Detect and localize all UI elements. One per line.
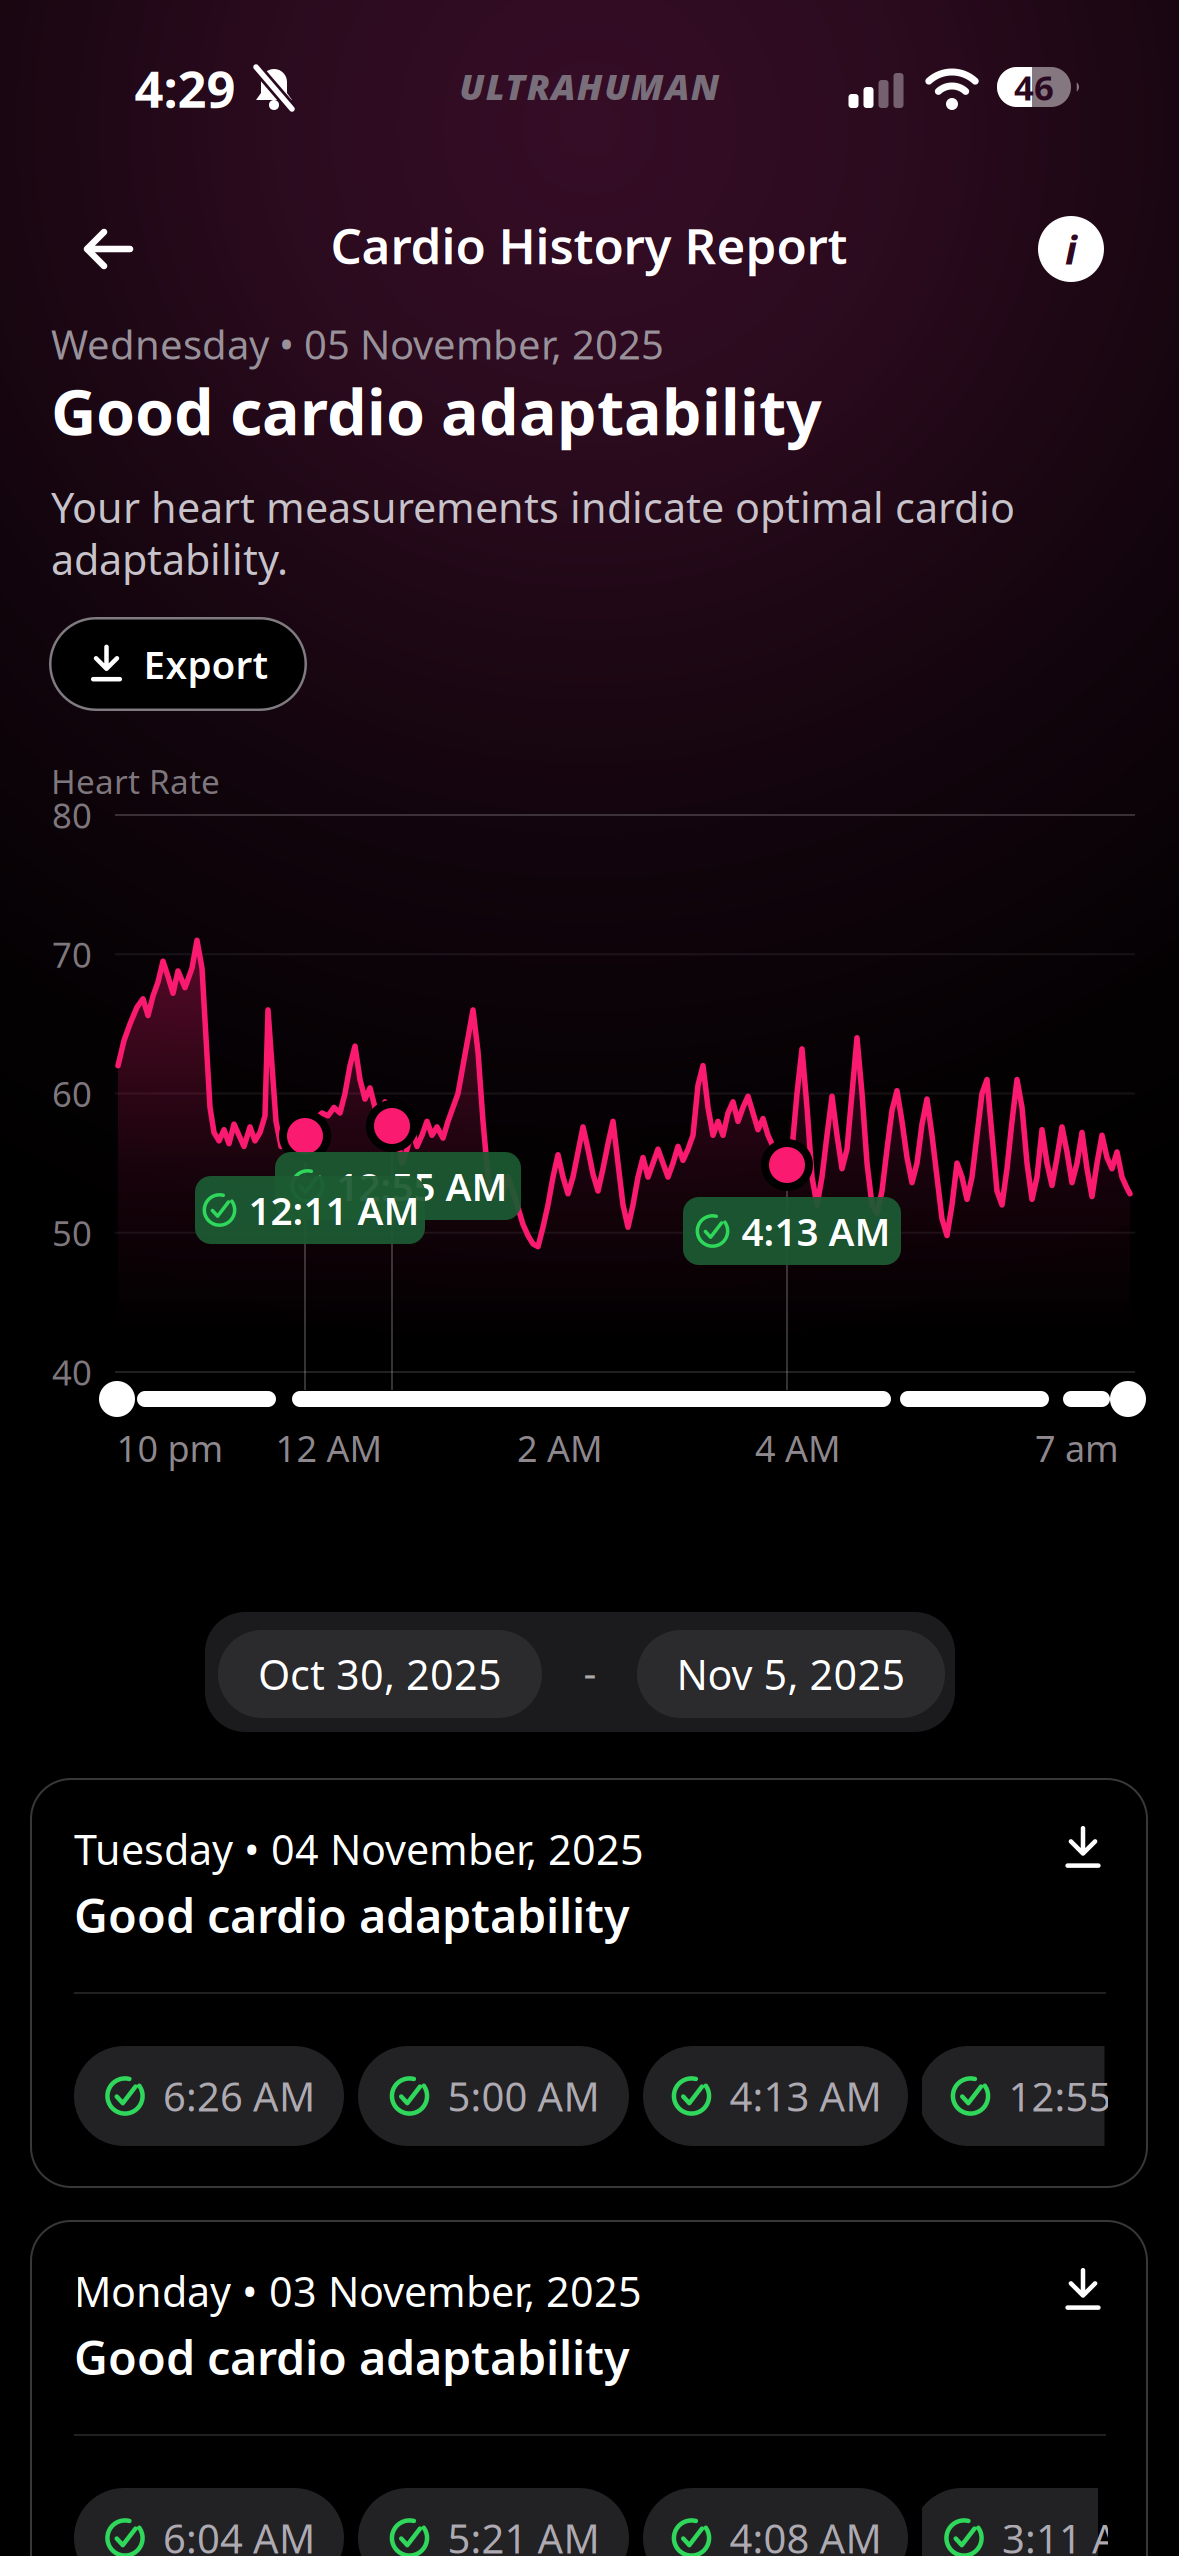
- staticText: Good cardio adaptability: [51, 369, 822, 453]
- button[interactable]: Nov 5, 2025: [637, 1630, 945, 1718]
- button[interactable]: 5:21 AM: [358, 2488, 629, 2556]
- staticText: Export: [143, 638, 268, 690]
- button[interactable]: 3:11 A: [922, 2488, 1108, 2556]
- staticText: 80: [52, 792, 92, 838]
- staticText: 10 pm: [116, 1424, 223, 1472]
- button[interactable]: Download report: [1061, 2268, 1105, 2312]
- staticText: 40: [52, 1349, 92, 1395]
- staticText: 6:04 AM: [163, 2511, 315, 2556]
- button[interactable]: Oct 30, 2025: [218, 1630, 542, 1718]
- button[interactable]: 6:26 AM: [74, 2046, 344, 2146]
- staticText: ULTRAHUMAN: [459, 62, 719, 110]
- staticText: 46: [1014, 64, 1054, 110]
- staticText: Wednesday • 05 November, 2025: [51, 317, 664, 370]
- staticText: 4:29: [134, 54, 235, 122]
- staticText: 3:11 A: [1002, 2511, 1118, 2556]
- staticText: 2 AM: [517, 1424, 603, 1472]
- staticText: 5:00 AM: [447, 2069, 599, 2122]
- staticText: i: [1065, 222, 1077, 275]
- staticText: 4 AM: [755, 1424, 841, 1472]
- staticText: Cardio History Report: [330, 212, 847, 278]
- button[interactable]: Range start: [99, 1381, 135, 1417]
- button[interactable]: Export: [49, 617, 307, 711]
- button[interactable]: Info: [1038, 216, 1104, 282]
- staticText: 12:11 AM: [248, 1184, 419, 1236]
- staticText: Nov 5, 2025: [676, 1647, 905, 1701]
- button[interactable]: 12:55: [922, 2046, 1108, 2146]
- staticText: Your heart measurements indicate optimal…: [51, 480, 1015, 534]
- button[interactable]: Range end: [1110, 1381, 1146, 1417]
- staticText: 7 am: [1035, 1424, 1119, 1472]
- staticText: 4:13 AM: [729, 2069, 881, 2122]
- staticText: Good cardio adaptability: [74, 2326, 630, 2388]
- staticText: 4:13 AM: [741, 1205, 890, 1257]
- button[interactable]: 6:04 AM: [74, 2488, 344, 2556]
- button[interactable]: 4:13 AM: [643, 2046, 908, 2146]
- staticText: 12:55: [1008, 2069, 1111, 2122]
- button[interactable]: Back: [84, 225, 132, 273]
- button[interactable]: Download report: [1061, 1826, 1105, 1870]
- staticText: Good cardio adaptability: [74, 1884, 630, 1946]
- staticText: 12 AM: [275, 1424, 382, 1472]
- staticText: Monday • 03 November, 2025: [74, 2264, 642, 2318]
- staticText: 5:21 AM: [447, 2511, 599, 2556]
- staticText: Heart Rate: [51, 759, 220, 803]
- staticText: 12:55 AM: [336, 1160, 507, 1212]
- button[interactable]: 5:00 AM: [358, 2046, 629, 2146]
- staticText: -: [583, 1645, 596, 1698]
- staticText: 50: [52, 1210, 92, 1256]
- staticText: Oct 30, 2025: [258, 1647, 502, 1701]
- staticText: 60: [52, 1070, 92, 1116]
- staticText: 70: [52, 931, 92, 977]
- staticText: 6:26 AM: [163, 2069, 315, 2122]
- button[interactable]: 4:08 AM: [643, 2488, 908, 2556]
- staticText: 4:08 AM: [729, 2511, 881, 2556]
- staticText: adaptability.: [51, 532, 288, 586]
- staticText: Tuesday • 04 November, 2025: [74, 1822, 644, 1876]
